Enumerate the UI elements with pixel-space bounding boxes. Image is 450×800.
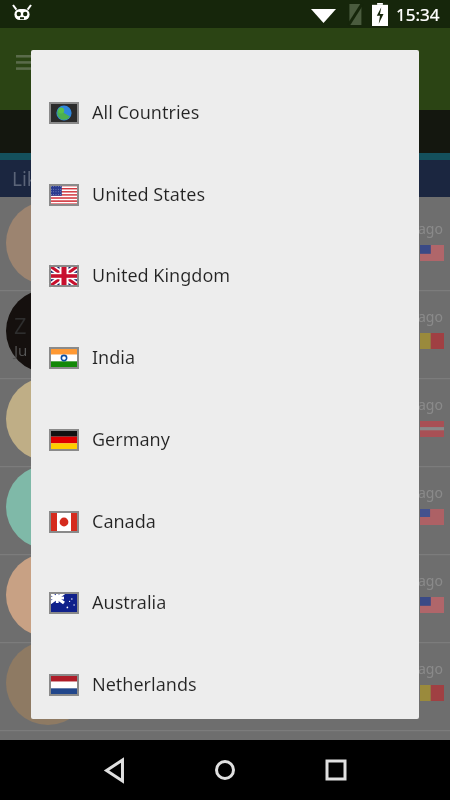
staticText: United Kingdom [92,263,231,288]
button[interactable]: Netherlands [31,644,419,719]
staticText: ago [418,571,443,590]
button[interactable]: Open navigation menu [8,45,44,81]
staticText: ago [418,483,443,502]
staticText: All Countries [92,100,200,125]
staticText: ago [418,395,443,414]
button[interactable]: All Countries [31,72,419,153]
button[interactable]: Home [201,746,249,794]
staticText: Netherlands [92,672,197,697]
button[interactable]: Canada [31,481,419,562]
staticText: United States [92,182,206,207]
staticText: ago [418,219,443,238]
staticText: Australia [92,590,167,615]
button[interactable]: Recent apps [312,746,360,794]
staticText: Likes [12,166,57,192]
button[interactable]: United States [31,154,419,235]
staticText: Canada [92,509,156,534]
staticText: India [92,345,136,370]
button[interactable]: United Kingdom [31,235,419,316]
staticText: Germany [92,427,170,452]
staticText: Z [14,310,27,340]
staticText: ago [418,307,443,326]
button[interactable]: Australia [31,562,419,643]
button[interactable]: Germany [31,399,419,480]
staticText: Ju [14,340,28,360]
button[interactable]: Back [90,746,138,794]
staticText: 15:34 [396,3,440,26]
button[interactable]: India [31,317,419,398]
staticText: ago [418,659,443,678]
